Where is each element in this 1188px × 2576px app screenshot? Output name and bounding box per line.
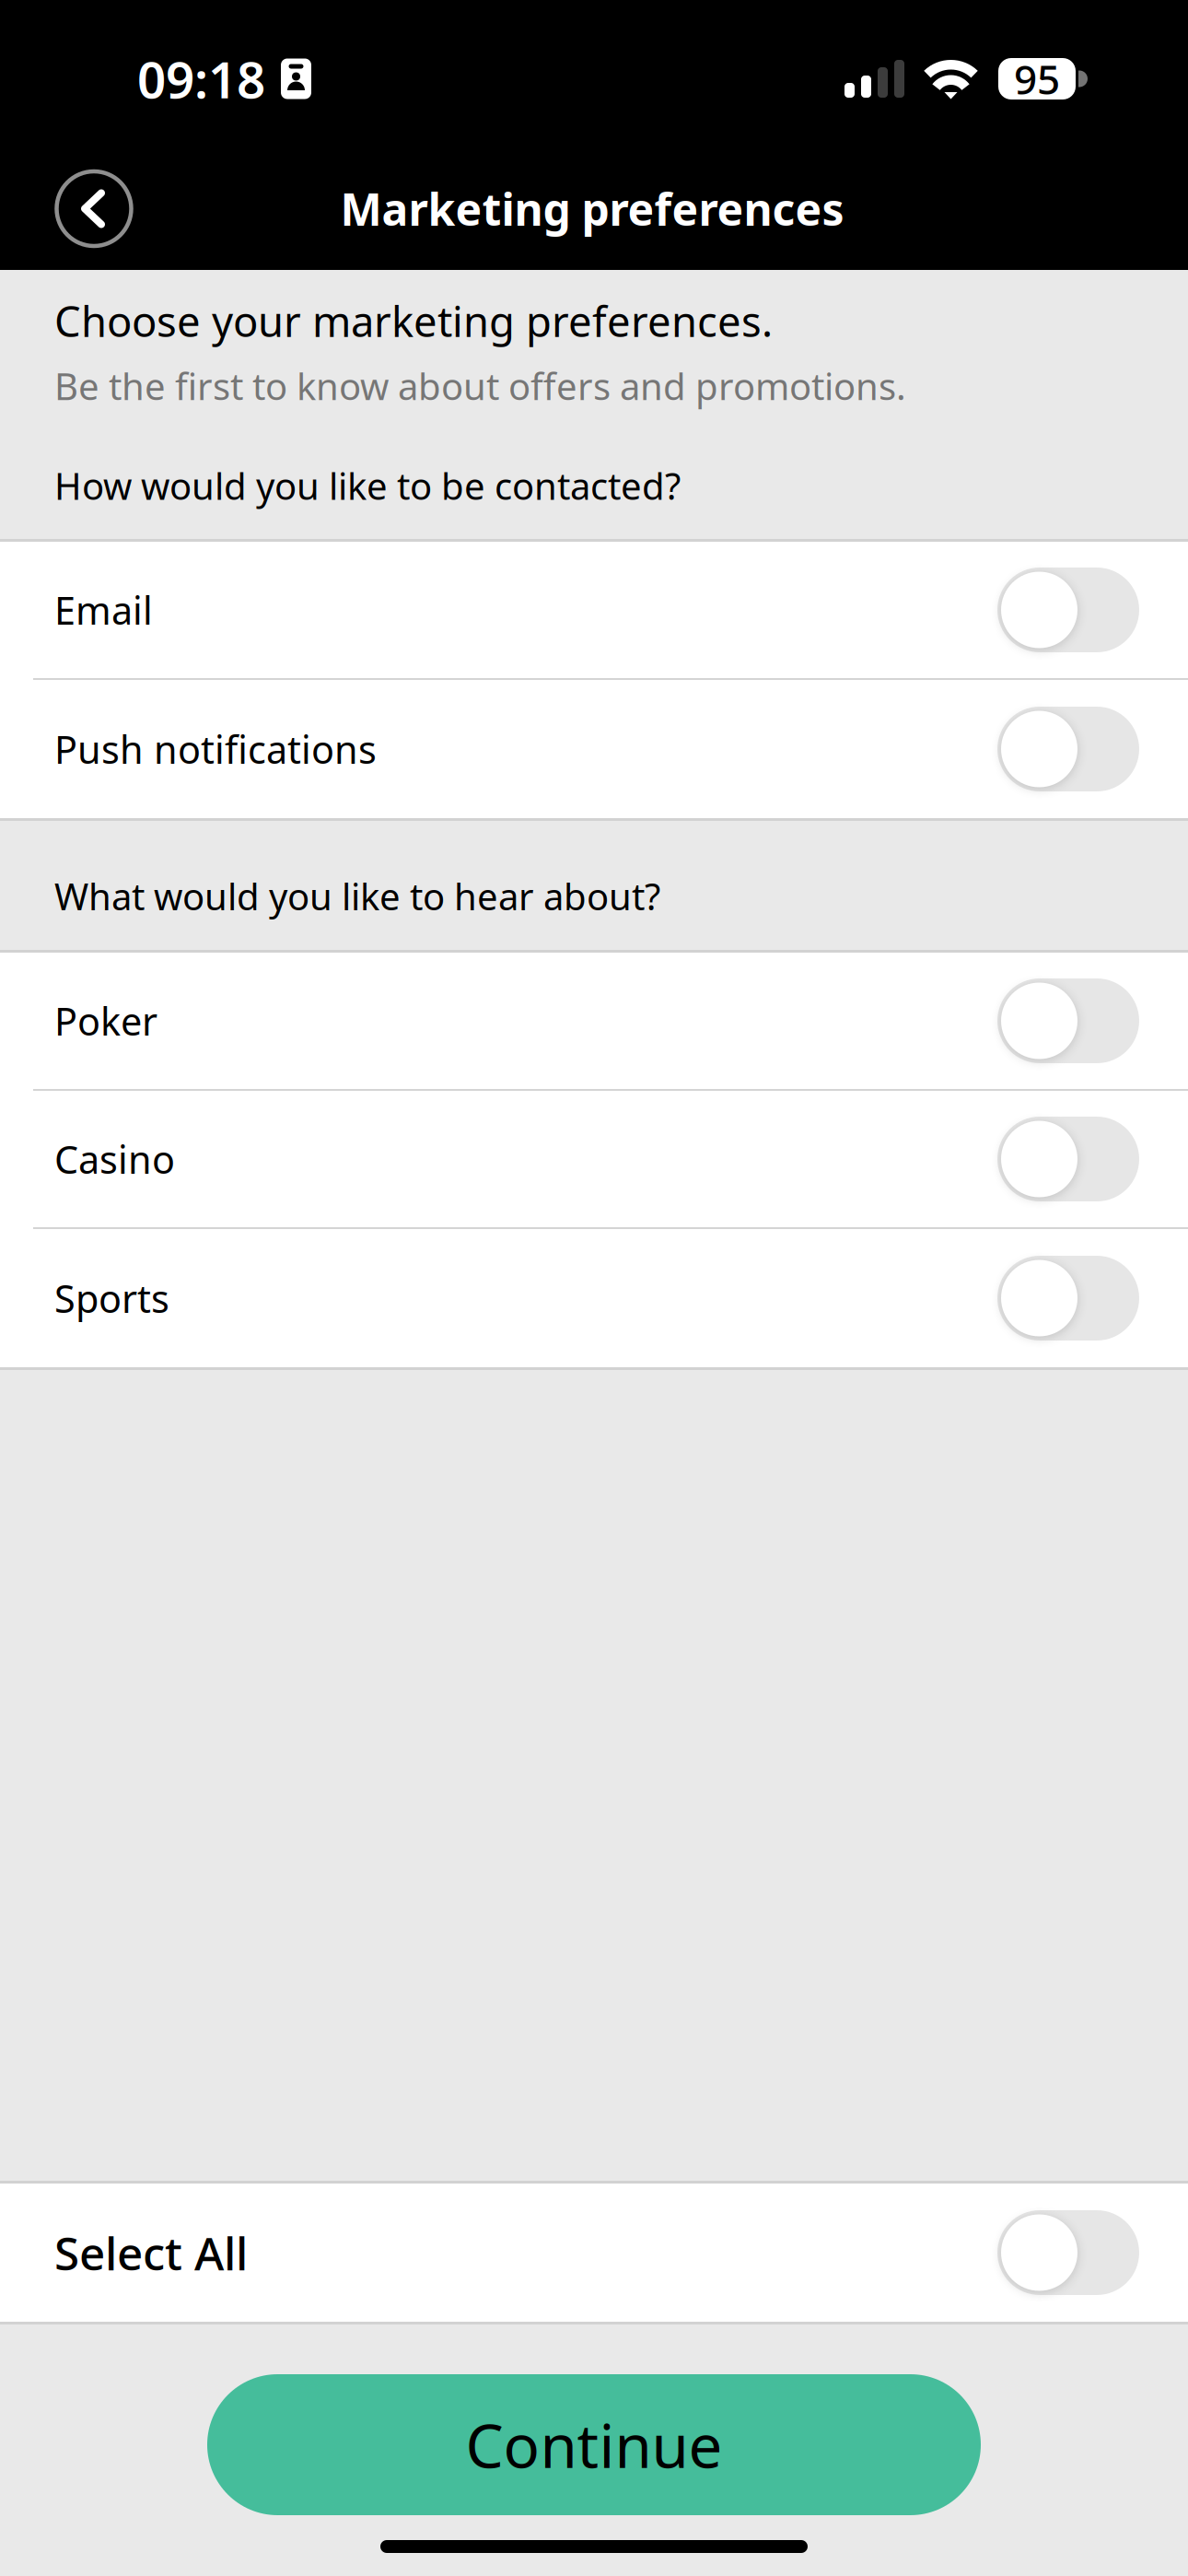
staticText: Casino [54, 1134, 175, 1184]
button[interactable]: Sports [0, 1229, 1188, 1367]
staticText: Choose your marketing preferences. [54, 293, 773, 348]
button[interactable]: Push notifications [0, 680, 1188, 818]
staticText: 95 [1014, 52, 1060, 106]
staticText: Marketing preferences [340, 179, 844, 238]
staticText: Be the first to know about offers and pr… [54, 361, 906, 410]
staticText: Select All [54, 2222, 248, 2283]
staticText: How would you like to be contacted? [54, 461, 681, 510]
button[interactable]: Poker [0, 953, 1188, 1091]
staticText: Continue [466, 2405, 722, 2485]
staticText: What would you like to hear about? [54, 872, 660, 920]
button[interactable]: Select All [0, 2184, 1188, 2322]
staticText: Poker [54, 996, 157, 1046]
button[interactable]: Continue [207, 2374, 981, 2515]
staticText: Push notifications [54, 724, 377, 774]
button[interactable]: Back [42, 157, 146, 260]
button[interactable]: Casino [0, 1091, 1188, 1229]
staticText: Email [54, 585, 153, 635]
staticText: Sports [54, 1273, 169, 1323]
button[interactable]: Email [0, 542, 1188, 680]
staticText: 09:18 [137, 45, 265, 112]
